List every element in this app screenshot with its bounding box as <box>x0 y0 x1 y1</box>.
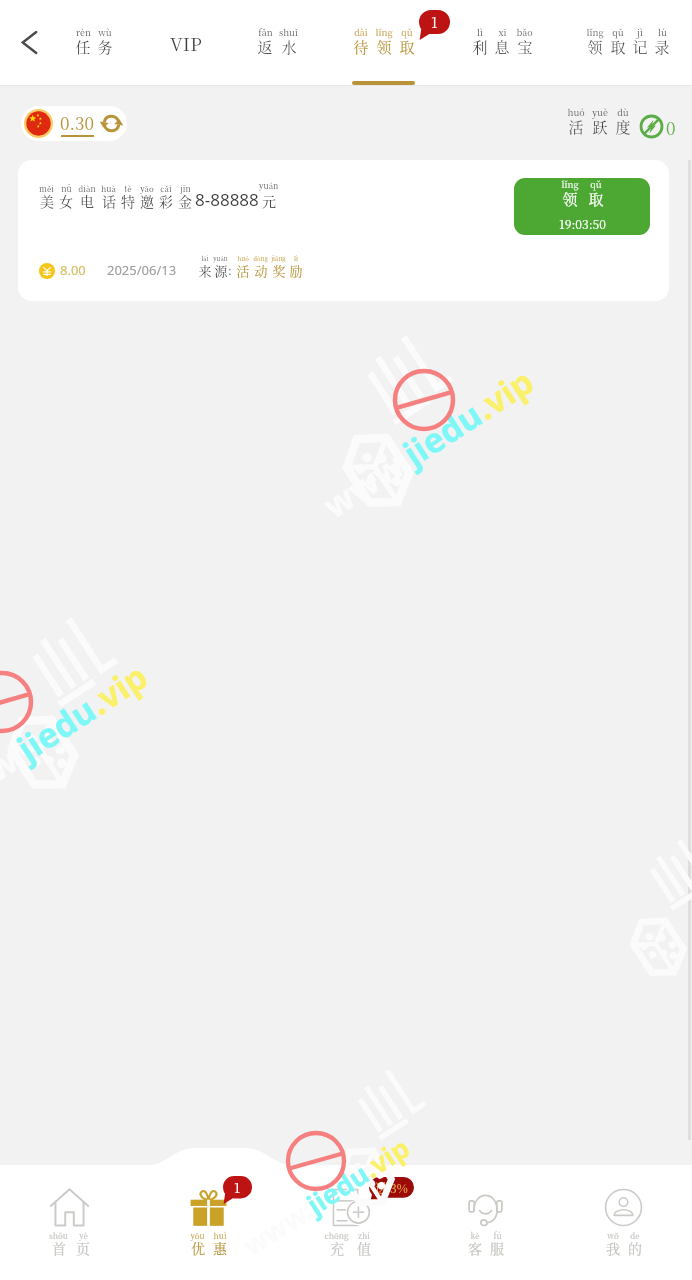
staticText: zhí <box>358 1230 370 1241</box>
staticText: www. <box>314 437 420 528</box>
staticText: lì <box>294 254 298 263</box>
staticText: www. <box>0 732 34 823</box>
staticText: kè <box>470 1230 480 1241</box>
button[interactable]: měi <box>18 160 669 301</box>
staticText: 服 <box>490 1238 504 1258</box>
staticText: 1 <box>234 1178 241 1197</box>
staticText: 的 <box>628 1238 642 1258</box>
staticText: 水 <box>281 36 297 58</box>
staticText: jì <box>637 26 643 39</box>
staticText: 返 <box>257 36 273 58</box>
staticText: tè <box>124 183 132 194</box>
staticText: 利 <box>472 36 488 58</box>
staticText: huó <box>237 254 249 263</box>
staticText: yuán <box>259 180 279 191</box>
staticText: 领 <box>587 36 603 58</box>
staticText: 取 <box>588 188 604 210</box>
staticText: wù <box>98 26 112 39</box>
staticText: měi <box>39 183 54 194</box>
button[interactable]: 送 3% <box>278 1165 416 1280</box>
button[interactable]: lì <box>440 29 564 91</box>
staticText: 页 <box>76 1238 90 1258</box>
staticText: lì <box>477 26 483 39</box>
staticText: 奖 <box>272 261 286 280</box>
staticText: 息 <box>494 36 510 58</box>
staticText: shuǐ <box>279 26 298 39</box>
staticText: xī <box>498 26 507 39</box>
button[interactable]: lǐng <box>566 29 690 91</box>
staticText: 送 3% <box>375 1179 408 1196</box>
staticText: 金 <box>178 191 192 211</box>
button[interactable]: Refresh balance <box>100 112 123 135</box>
staticText: 活 <box>236 261 250 280</box>
staticText: lǐng <box>561 178 579 191</box>
staticText: 来 <box>198 261 212 280</box>
button[interactable]: rèn <box>32 29 156 91</box>
staticText: 值 <box>357 1238 371 1258</box>
staticText: lǐng <box>586 26 604 39</box>
staticText: nǚ <box>61 183 72 194</box>
staticText: shǒu <box>49 1230 68 1241</box>
staticText: 取 <box>399 36 415 58</box>
staticText: 动 <box>254 261 268 280</box>
button[interactable]: lǐng <box>514 178 650 235</box>
staticText: 录 <box>654 36 670 58</box>
staticText: fú <box>493 1230 502 1241</box>
staticText: 活 <box>568 116 584 138</box>
staticText: dù <box>617 106 629 119</box>
staticText: dòng <box>253 254 268 263</box>
staticText: 务 <box>97 36 113 58</box>
staticText: jiedu <box>8 686 105 771</box>
staticText: lǐng <box>375 26 393 39</box>
staticText: jiedu <box>394 391 491 476</box>
button[interactable]: shǒu <box>0 1165 139 1280</box>
staticText: 0 <box>666 115 676 139</box>
staticText: VIP <box>170 30 202 56</box>
staticText: www. <box>236 1191 319 1264</box>
staticText: qǔ <box>612 26 624 39</box>
staticText: wǒ <box>607 1230 619 1241</box>
staticText: .vip <box>80 653 156 725</box>
staticText: 优 <box>191 1238 205 1258</box>
staticText: huì <box>213 1230 227 1241</box>
button[interactable]: wǒ <box>554 1165 692 1280</box>
staticText: lù <box>658 26 667 39</box>
staticText: yuè <box>592 106 608 119</box>
staticText: jiǎng <box>271 254 286 263</box>
staticText: 彩 <box>159 191 173 211</box>
button[interactable]: 1 <box>139 1165 278 1280</box>
staticText: cǎi <box>160 183 172 194</box>
staticText: 宝 <box>517 36 533 58</box>
staticText: 领 <box>562 188 578 210</box>
staticText: chōng <box>324 1230 349 1241</box>
staticText: 2025/06/13 <box>107 261 177 279</box>
button[interactable]: fǎn <box>215 29 339 91</box>
staticText: 特 <box>121 191 135 211</box>
staticText: 度 <box>615 116 631 138</box>
staticText: 8-88888 <box>195 188 259 211</box>
staticText: 美 <box>40 191 54 211</box>
button[interactable]: huó <box>567 109 676 138</box>
staticText: 跃 <box>592 116 608 138</box>
staticText: 励 <box>289 261 303 280</box>
staticText: 任 <box>75 36 91 58</box>
staticText: : <box>228 261 232 278</box>
staticText: 0.30 <box>60 110 94 134</box>
staticText: 惠 <box>213 1238 227 1258</box>
staticText: huà <box>101 183 116 194</box>
staticText: huó <box>567 106 585 119</box>
staticText: 19:03:50 <box>559 215 606 232</box>
button[interactable]: Back <box>7 20 51 64</box>
staticText: 取 <box>610 36 626 58</box>
staticText: diàn <box>78 183 96 194</box>
button[interactable]: kè <box>416 1165 554 1280</box>
staticText: 客 <box>468 1238 482 1258</box>
button[interactable]: 0.30 <box>21 106 127 141</box>
staticText: jiedu <box>299 1155 376 1222</box>
staticText: qǔ <box>590 178 602 191</box>
button[interactable]: VIP <box>146 12 226 74</box>
staticText: yuán <box>213 254 228 263</box>
staticText: 女 <box>59 191 73 211</box>
button[interactable]: dài <box>321 29 445 91</box>
staticText: 8.00 <box>60 261 86 279</box>
